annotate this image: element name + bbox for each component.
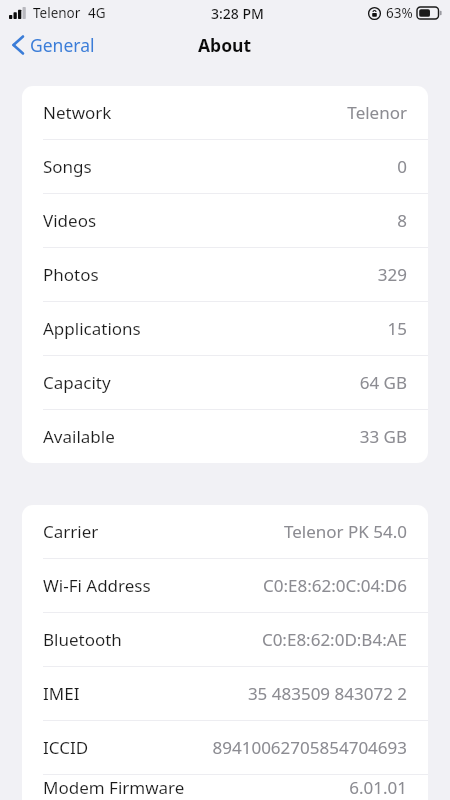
staticText: Available bbox=[43, 425, 115, 448]
staticText: Capacity bbox=[43, 371, 111, 394]
staticText: C0:E8:62:0D:B4:AE bbox=[261, 628, 407, 651]
staticText: Photos bbox=[43, 263, 99, 286]
staticText: Songs bbox=[43, 155, 92, 178]
staticText: IMEI bbox=[43, 682, 80, 705]
staticText: 8 bbox=[397, 209, 407, 232]
button[interactable]: Available bbox=[22, 410, 428, 463]
staticText: Wi-Fi Address bbox=[43, 574, 151, 597]
staticText: 6.01.01 bbox=[349, 776, 407, 799]
button[interactable]: Back to General bbox=[12, 29, 95, 61]
staticText: 329 bbox=[377, 263, 407, 286]
staticText: Carrier bbox=[43, 520, 99, 543]
staticText: Bluetooth bbox=[43, 628, 122, 651]
staticText: Modem Firmware bbox=[43, 776, 185, 799]
staticText: Network bbox=[43, 101, 112, 124]
staticText: 4G bbox=[88, 4, 106, 22]
staticText: C0:E8:62:0C:04:D6 bbox=[263, 574, 407, 597]
staticText: 89410062705854704693 bbox=[212, 736, 407, 759]
staticText: Telenor bbox=[33, 4, 81, 22]
button[interactable]: Capacity bbox=[22, 356, 428, 410]
staticText: About bbox=[198, 33, 252, 57]
button[interactable]: Photos bbox=[22, 248, 428, 302]
staticText: ICCID bbox=[43, 736, 89, 759]
button[interactable]: Applications bbox=[22, 302, 428, 356]
button[interactable]: Wi-Fi Address bbox=[22, 559, 428, 613]
staticText: Telenor bbox=[347, 101, 407, 124]
staticText: General bbox=[30, 33, 95, 57]
staticText: 64 GB bbox=[359, 371, 407, 394]
staticText: 0 bbox=[397, 155, 407, 178]
staticText: 33 GB bbox=[359, 425, 407, 448]
button[interactable]: IMEI bbox=[22, 667, 428, 721]
button[interactable]: Network bbox=[22, 86, 428, 140]
staticText: 3:28 PM bbox=[211, 4, 264, 23]
button[interactable]: Videos bbox=[22, 194, 428, 248]
button[interactable]: Songs bbox=[22, 140, 428, 194]
button[interactable]: ICCID bbox=[22, 721, 428, 775]
staticText: 15 bbox=[387, 317, 407, 340]
staticText: 35 483509 843072 2 bbox=[247, 682, 407, 705]
staticText: 63% bbox=[386, 4, 413, 22]
staticText: Videos bbox=[43, 209, 97, 232]
button[interactable]: Bluetooth bbox=[22, 613, 428, 667]
staticText: Applications bbox=[43, 317, 141, 340]
staticText: Telenor PK 54.0 bbox=[283, 520, 407, 543]
button[interactable]: Carrier bbox=[22, 505, 428, 559]
button[interactable]: Modem Firmware bbox=[22, 775, 428, 800]
